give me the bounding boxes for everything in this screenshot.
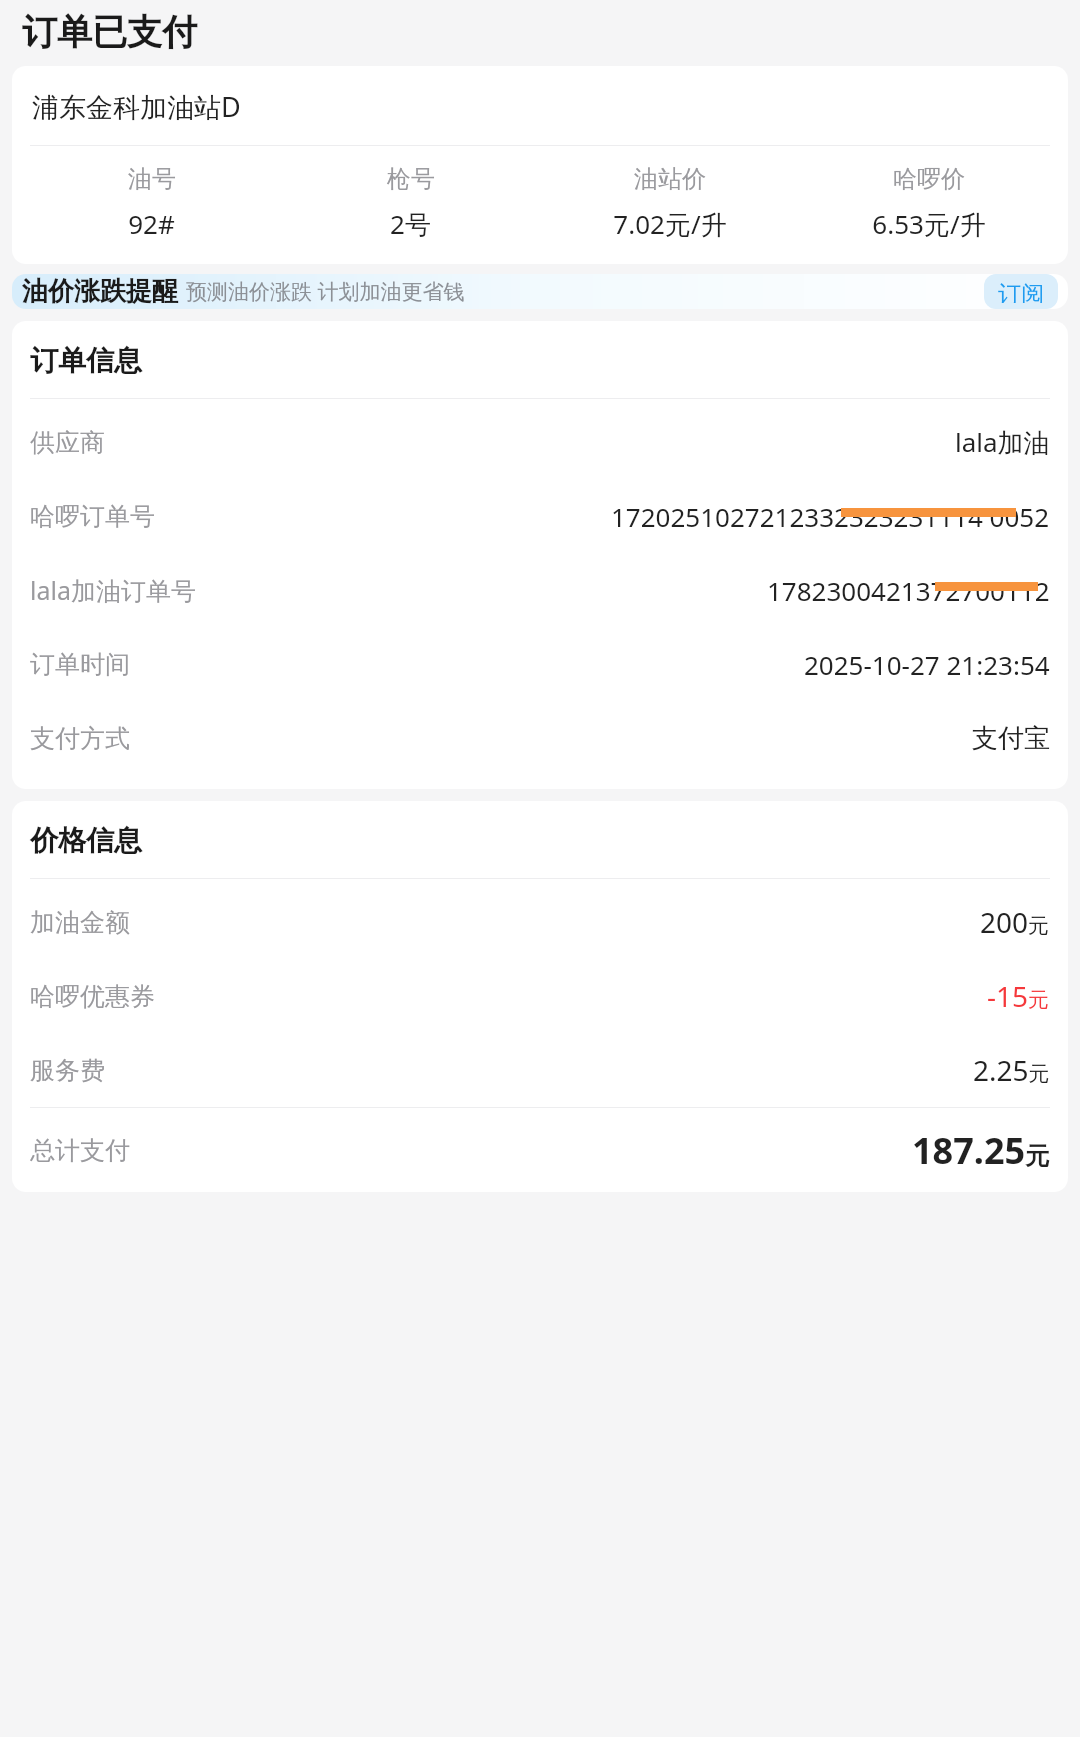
staticText: 92# [128, 206, 175, 241]
staticText: lala加油订单号 [30, 573, 196, 607]
button[interactable]: 浦东金科加油站D [12, 66, 1068, 264]
staticText: 哈啰优惠券 [30, 981, 155, 1012]
staticText: 支付宝 [972, 722, 1050, 755]
staticText: 枪号 [387, 164, 435, 194]
staticText: 预测油价涨跌 计划加油更省钱 [186, 277, 465, 306]
button[interactable]: 订单信息 [12, 321, 1068, 789]
staticText: 支付方式 [30, 723, 130, 754]
staticText: 加油金额 [30, 907, 130, 938]
staticText: 哈啰订单号 [30, 501, 155, 532]
staticText: 油价涨跌提醒 [22, 275, 178, 308]
staticText: 哈啰价 [893, 164, 965, 194]
staticText: 2025-10-27 21:23:54 [804, 647, 1050, 682]
staticText: 1782300421372700112 [767, 573, 1050, 608]
staticText: 价格信息 [30, 823, 142, 858]
staticText: 订单信息 [30, 343, 142, 378]
staticText: -15元 [987, 977, 1050, 1015]
staticText: 订单时间 [30, 649, 130, 680]
staticText: 6.53元/升 [872, 206, 986, 242]
staticText: 2号 [390, 206, 431, 242]
staticText: 油站价 [634, 164, 706, 194]
button[interactable]: 订阅 [984, 274, 1058, 309]
staticText: 订单已支付 [22, 10, 197, 54]
staticText: 订阅 [998, 280, 1044, 303]
staticText: 总计支付 [30, 1135, 130, 1166]
button[interactable]: 油价涨跌提醒 [12, 274, 1068, 309]
staticText: 2.25元 [973, 1051, 1050, 1089]
staticText: 浦东金科加油站D [32, 88, 241, 125]
staticText: 7.02元/升 [613, 206, 727, 242]
staticText: 服务费 [30, 1055, 105, 1086]
staticText: 1720251027212332323231114 0052 [611, 499, 1050, 534]
staticText: 供应商 [30, 427, 105, 458]
staticText: 187.25元 [912, 1126, 1050, 1175]
button[interactable]: 价格信息 [12, 801, 1068, 1192]
staticText: 油号 [128, 164, 176, 194]
staticText: 200元 [980, 903, 1050, 941]
staticText: lala加油 [955, 424, 1050, 460]
